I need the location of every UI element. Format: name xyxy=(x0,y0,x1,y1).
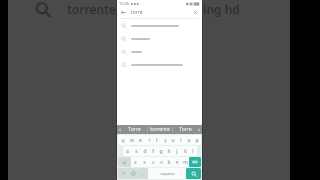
staticText: o xyxy=(187,137,191,144)
button[interactable]: Search xyxy=(186,168,201,179)
button[interactable]: f xyxy=(149,146,157,156)
staticText: w xyxy=(130,137,134,144)
staticText: Torre xyxy=(128,126,141,133)
staticText: u xyxy=(171,137,175,144)
staticText: n xyxy=(175,159,179,166)
staticText: , xyxy=(142,171,144,176)
button[interactable]: t xyxy=(153,135,161,145)
button[interactable]: s xyxy=(132,146,141,156)
button[interactable]: j xyxy=(173,146,181,156)
button[interactable]: g xyxy=(157,146,165,156)
staticText: 10:06 xyxy=(119,1,130,6)
staticText: q xyxy=(121,137,125,144)
button[interactable]: Backspace xyxy=(189,157,201,167)
staticText: j xyxy=(176,148,178,155)
staticText: y xyxy=(164,137,167,144)
button[interactable]: q xyxy=(118,135,127,145)
button[interactable]: y xyxy=(161,135,169,145)
button[interactable]: x xyxy=(140,157,149,167)
staticText: p xyxy=(195,137,199,144)
staticText: torrente xyxy=(150,126,170,133)
button[interactable]: Back xyxy=(120,9,127,16)
button[interactable]: espacio xyxy=(148,168,186,179)
button[interactable]: torrente xyxy=(148,125,172,134)
button[interactable]: Clear xyxy=(192,9,199,16)
button[interactable]: Torre xyxy=(122,125,147,134)
staticText: b xyxy=(167,159,171,166)
button[interactable]: Search xyxy=(33,1,53,18)
button[interactable] xyxy=(117,58,202,71)
staticText: r xyxy=(148,137,151,144)
staticText: torre xyxy=(131,9,143,16)
button[interactable]: i xyxy=(177,135,185,145)
button[interactable]: v xyxy=(157,157,165,167)
button[interactable]: c xyxy=(149,157,157,167)
button[interactable]: l xyxy=(189,146,197,156)
button[interactable]: h xyxy=(165,146,173,156)
button[interactable]: torre xyxy=(131,9,192,16)
button[interactable] xyxy=(117,19,202,32)
button[interactable]: Emoji xyxy=(128,168,138,179)
staticText: k xyxy=(184,148,187,155)
staticText: a xyxy=(126,148,129,155)
staticText: f xyxy=(152,148,154,155)
staticText: ing hd xyxy=(203,1,240,17)
staticText: v xyxy=(160,159,163,166)
staticText: t xyxy=(156,137,158,144)
staticText: d xyxy=(143,148,147,155)
button[interactable]: r xyxy=(145,135,153,145)
button[interactable]: a xyxy=(123,146,132,156)
button[interactable] xyxy=(117,45,202,58)
staticText: g xyxy=(159,148,163,155)
staticText: l xyxy=(192,148,194,155)
button[interactable]: w xyxy=(127,135,136,145)
staticText: e xyxy=(139,137,142,144)
button[interactable]: Shift xyxy=(118,157,131,167)
staticText: ?1 xyxy=(121,171,126,176)
staticText: m xyxy=(183,159,188,166)
staticText: i xyxy=(180,137,182,144)
staticText: Torre xyxy=(179,126,192,133)
button[interactable] xyxy=(117,32,202,45)
button[interactable]: m xyxy=(181,157,189,167)
button[interactable]: Torre xyxy=(173,125,197,134)
staticText: c xyxy=(152,159,155,166)
button[interactable]: k xyxy=(181,146,189,156)
staticText: torrente m xyxy=(67,1,131,17)
staticText: espacio xyxy=(160,171,175,176)
button[interactable]: b xyxy=(165,157,173,167)
staticText: z xyxy=(134,159,137,166)
button[interactable]: n xyxy=(173,157,181,167)
button[interactable]: o xyxy=(185,135,193,145)
staticText: x xyxy=(143,159,146,166)
button[interactable]: u xyxy=(169,135,177,145)
button[interactable]: p xyxy=(193,135,201,145)
staticText: h xyxy=(167,148,171,155)
button[interactable]: ?1 xyxy=(118,168,128,179)
button[interactable]: e xyxy=(136,135,145,145)
button[interactable]: d xyxy=(141,146,149,156)
staticText: s xyxy=(135,148,138,155)
button[interactable]: z xyxy=(131,157,140,167)
